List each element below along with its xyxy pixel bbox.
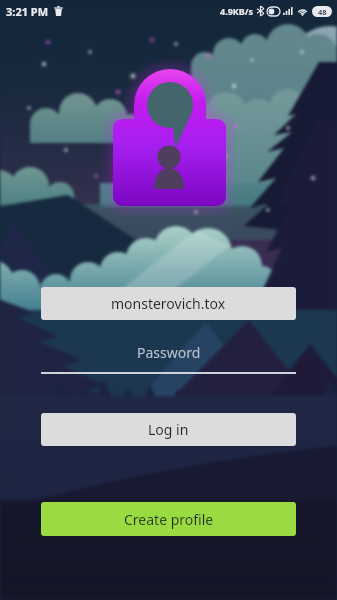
staticText: 3:21 PM bbox=[6, 4, 49, 19]
button[interactable]: Log in bbox=[41, 413, 296, 446]
staticText: monsterovich.tox bbox=[111, 294, 226, 313]
staticText: Create profile bbox=[124, 510, 214, 529]
button[interactable]: Create profile bbox=[41, 502, 296, 536]
button[interactable]: monsterovich.tox bbox=[41, 287, 296, 320]
staticText: Password bbox=[137, 343, 201, 362]
staticText: Log in bbox=[148, 420, 189, 439]
button[interactable]: Password bbox=[41, 341, 296, 374]
staticText: 48 bbox=[318, 7, 327, 17]
staticText: 4.9KB/s bbox=[220, 5, 254, 17]
